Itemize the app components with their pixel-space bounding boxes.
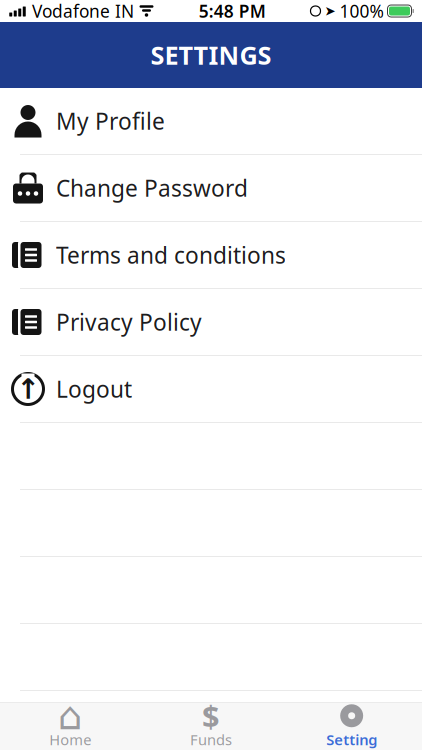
staticText: 100% bbox=[339, 0, 383, 22]
staticText: Funds bbox=[190, 730, 232, 749]
button[interactable]: My Profile bbox=[0, 88, 422, 155]
button[interactable]: Privacy Policy bbox=[0, 289, 422, 356]
button[interactable]: ⌂ bbox=[0, 703, 141, 750]
button[interactable]: $ bbox=[141, 703, 281, 750]
button[interactable]: Terms and conditions bbox=[0, 222, 422, 289]
staticText: My Profile bbox=[56, 106, 165, 136]
staticText: Setting bbox=[326, 730, 377, 749]
staticText: Privacy Policy bbox=[56, 307, 202, 337]
staticText: ➤ bbox=[324, 3, 335, 18]
staticText: 5:48 PM bbox=[199, 0, 266, 22]
button[interactable]: Change Password bbox=[0, 155, 422, 222]
staticText: Change Password bbox=[56, 173, 248, 203]
staticText: $ bbox=[202, 695, 220, 736]
staticText: Vodafone IN bbox=[32, 0, 134, 22]
staticText: SETTINGS bbox=[150, 38, 271, 72]
staticText: Logout bbox=[56, 374, 132, 404]
button[interactable]: Setting bbox=[281, 703, 422, 750]
staticText: Terms and conditions bbox=[56, 240, 286, 270]
staticText: ⌂ bbox=[58, 694, 83, 738]
button[interactable]: ↑ bbox=[0, 356, 422, 423]
staticText: ↑ bbox=[16, 373, 39, 405]
staticText: Home bbox=[49, 730, 91, 749]
